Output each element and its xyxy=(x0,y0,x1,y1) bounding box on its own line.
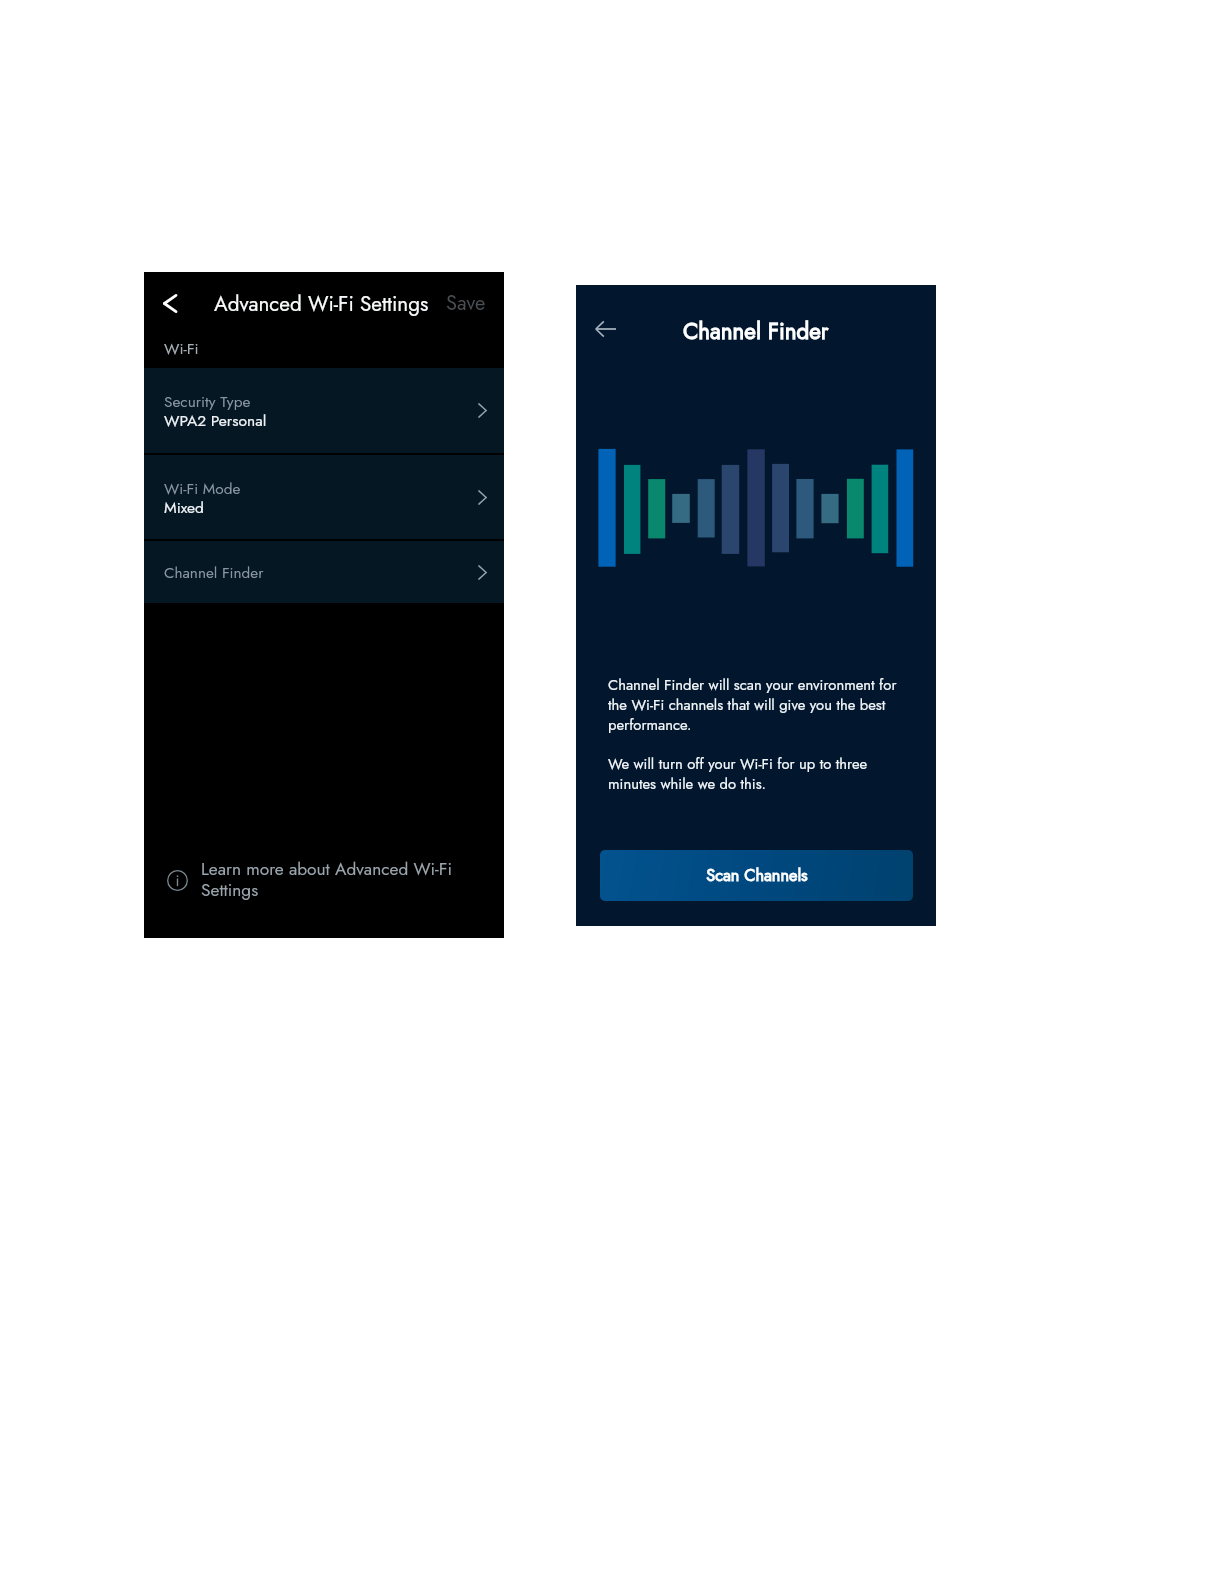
staticText: We will turn off your Wi-Fi for up to th… xyxy=(608,753,904,794)
button[interactable]: Back xyxy=(583,307,627,351)
staticText: Wi-Fi Mode xyxy=(164,478,241,500)
staticText: Learn more about Advanced Wi-Fi Settings xyxy=(201,856,452,902)
staticText: Save xyxy=(446,289,486,318)
button[interactable]: Scan Channels xyxy=(600,850,913,901)
button[interactable]: Wi-Fi Mode xyxy=(144,455,504,539)
staticText: Mixed xyxy=(164,496,204,519)
button[interactable]: Learn more about Advanced Wi-Fi Settings xyxy=(144,845,504,913)
staticText: Channel Finder xyxy=(683,315,829,347)
button[interactable]: Channel Finder xyxy=(144,541,504,603)
staticText: Channel Finder will scan your environmen… xyxy=(608,674,904,735)
staticText: Scan Channels xyxy=(706,864,808,888)
staticText: WPA2 Personal xyxy=(164,409,267,432)
button[interactable]: Save xyxy=(446,289,486,318)
staticText: Channel Finder xyxy=(164,562,264,584)
staticText: Advanced Wi-Fi Settings xyxy=(214,289,429,319)
staticText: Wi-Fi xyxy=(164,337,199,360)
button[interactable]: Security Type xyxy=(144,368,504,453)
button[interactable]: Back xyxy=(149,282,191,324)
staticText: Security Type xyxy=(164,391,251,413)
